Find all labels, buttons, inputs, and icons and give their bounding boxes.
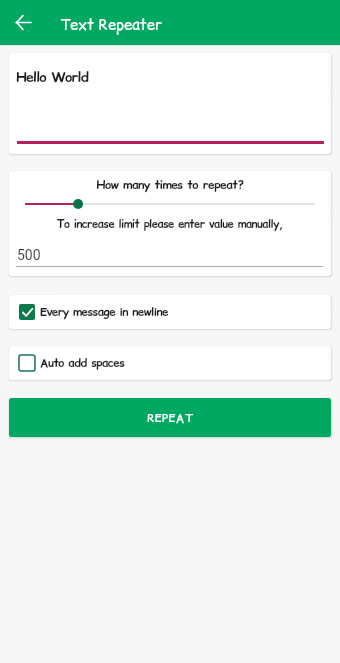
staticText: Auto add spaces [40, 355, 125, 371]
staticText: REPEAT [147, 409, 193, 426]
staticText: How many times to repeat? [9, 176, 331, 193]
button[interactable]: Back [0, 0, 45, 45]
button[interactable]: REPEAT [9, 398, 331, 437]
button[interactable]: Every message in newline [9, 295, 331, 329]
staticText: Every message in newline [40, 304, 168, 320]
staticText: To increase limit please enter value man… [9, 216, 331, 232]
button[interactable]: Auto add spaces [9, 346, 331, 380]
staticText: 500 [17, 247, 41, 263]
staticText: Text Repeater [60, 14, 163, 35]
button[interactable]: Repeat count slider [9, 196, 331, 212]
staticText: Hello World [16, 67, 89, 87]
